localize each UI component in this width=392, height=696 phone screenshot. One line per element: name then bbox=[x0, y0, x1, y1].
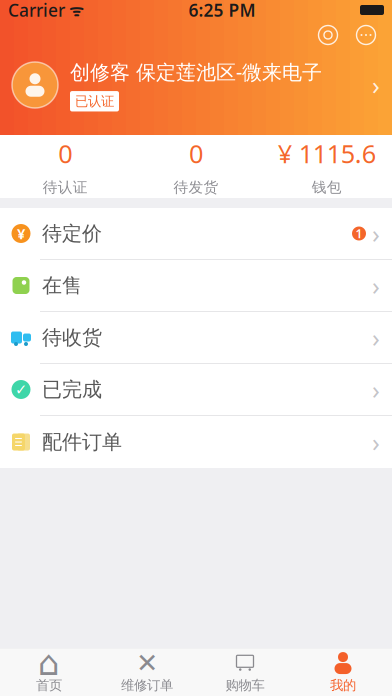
staticText: › bbox=[372, 321, 380, 354]
button[interactable]: 待收货 bbox=[0, 312, 392, 364]
button[interactable]: 购物车 bbox=[196, 648, 294, 696]
staticText: 待认证 bbox=[43, 178, 88, 196]
staticText: 钱包 bbox=[312, 178, 342, 196]
staticText: 创修客 保定莲池区-微来电子 bbox=[70, 58, 322, 85]
staticText: 已完成 bbox=[42, 377, 102, 402]
staticText: 首页 bbox=[36, 677, 62, 693]
staticText: 待收货 bbox=[42, 325, 102, 350]
staticText: 我的 bbox=[330, 677, 356, 693]
staticText: 0 bbox=[189, 137, 203, 170]
staticText: 待发货 bbox=[173, 178, 218, 196]
staticText: Carrier bbox=[8, 0, 65, 21]
staticText: 购物车 bbox=[225, 677, 264, 693]
staticText: 1 bbox=[355, 225, 362, 241]
staticText: ⌂ bbox=[38, 643, 60, 683]
staticText: ᯤ bbox=[65, 0, 84, 21]
button[interactable]: ¥ bbox=[0, 208, 392, 260]
button[interactable]: ✓ bbox=[0, 364, 392, 416]
button[interactable]: ¥ 1115.6 bbox=[261, 135, 392, 198]
button[interactable]: 创修客 保定莲池区-微来电子 bbox=[0, 50, 392, 120]
staticText: ✕ bbox=[136, 648, 158, 678]
staticText: › bbox=[372, 217, 380, 250]
button[interactable]: 我的 bbox=[294, 648, 392, 696]
staticText: › bbox=[372, 425, 380, 459]
staticText: 0 bbox=[58, 137, 72, 170]
button[interactable]: ⌂ bbox=[0, 648, 98, 696]
button[interactable]: 0 bbox=[0, 135, 131, 198]
button[interactable]: 在售 bbox=[0, 260, 392, 312]
button[interactable]: ✕ bbox=[98, 648, 196, 696]
staticText: 6:25 PM bbox=[188, 0, 255, 21]
staticText: › bbox=[372, 68, 380, 102]
button[interactable]: 配件订单 bbox=[0, 416, 392, 468]
button[interactable]: 消息 bbox=[354, 23, 378, 47]
staticText: 在售 bbox=[42, 273, 82, 298]
staticText: ✓ bbox=[15, 381, 27, 398]
staticText: › bbox=[372, 373, 380, 406]
staticText: 待定价 bbox=[42, 221, 102, 246]
button[interactable]: 设置 bbox=[316, 23, 340, 47]
staticText: 已认证 bbox=[75, 93, 114, 109]
staticText: ¥ 1115.6 bbox=[278, 137, 376, 170]
staticText: ¥ bbox=[17, 224, 25, 243]
staticText: 配件订单 bbox=[42, 430, 122, 454]
staticText: 维修订单 bbox=[121, 677, 173, 693]
button[interactable]: 0 bbox=[131, 135, 261, 198]
staticText: › bbox=[372, 269, 380, 302]
